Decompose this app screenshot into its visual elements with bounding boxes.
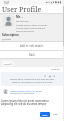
staticText: consectetur adipiscing: [10, 92, 35, 95]
staticText: Next: [42, 113, 48, 116]
staticText: sed do eiusmod: [16, 29, 34, 32]
staticText: @lorem: [2, 37, 12, 40]
button[interactable]: ◈: [49, 75, 51, 78]
staticText: consectetur adipiscing elit sed do eius: [3, 77, 61, 80]
button[interactable]: ✕: [44, 75, 47, 78]
staticText: ▾: [22, 16, 24, 18]
staticText: Mr.: [16, 15, 21, 19]
staticText: Back: [29, 53, 35, 57]
button[interactable]: Add or edit details: [0, 42, 64, 50]
button[interactable]: Back: [0, 51, 64, 58]
staticText: ◆ ☲ ▲ ▮ ■ ● ▌: [46, 1, 62, 4]
staticText: Lorem ipsum dolor sit amet: [16, 23, 48, 26]
staticText: consectetur adipiscing elit: [16, 26, 46, 29]
button[interactable]: Help: [53, 113, 59, 116]
staticText: Add or edit details: [20, 44, 44, 48]
staticText: Lorem ipsum dolor sit amet consectetur: [1, 99, 49, 102]
staticText: 9:41: [4, 1, 10, 5]
staticText: verified bio: [16, 19, 29, 22]
staticText: tempor incididunt ut labore dolore: [3, 80, 61, 83]
staticText: Filter ▾: [4, 62, 12, 65]
staticText: User Profile: [2, 5, 42, 13]
staticText: Subscription: [2, 33, 19, 37]
button[interactable]: ✦: [53, 75, 56, 78]
button[interactable]: Filter ▾: [4, 62, 12, 65]
button[interactable]: View all: [51, 67, 60, 70]
staticText: lorem ipsum dolor sit amet: [10, 89, 42, 92]
staticText: adipiscing elit sed do eiusmod tempor: [1, 102, 47, 105]
button[interactable]: Next: [42, 113, 48, 116]
